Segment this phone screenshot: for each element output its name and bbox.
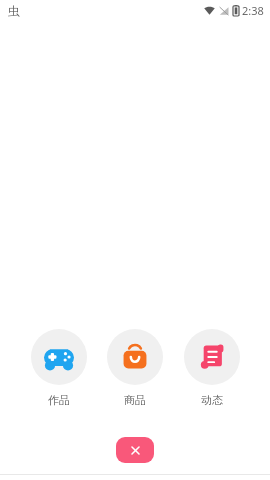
button[interactable]: 商品 (101, 327, 169, 409)
button[interactable]: 作品 (25, 327, 93, 409)
staticText: 2:38 (242, 3, 264, 18)
staticText: 商品 (124, 393, 146, 407)
button[interactable]: 动态 (178, 327, 246, 409)
staticText: 虫 (8, 3, 20, 18)
button[interactable]: Close (116, 437, 154, 463)
staticText: 动态 (201, 393, 223, 407)
staticText: 作品 (48, 393, 70, 407)
